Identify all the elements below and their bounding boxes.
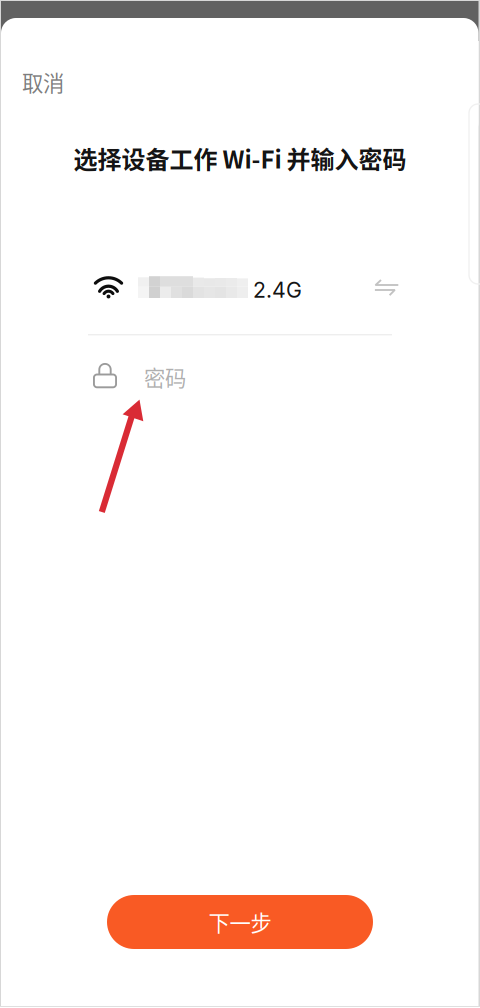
staticText: 选择设备工作 Wi-Fi 并输入密码 [73,141,406,175]
staticText: 密码 [144,362,186,392]
button[interactable]: Switch band [365,265,409,309]
button[interactable]: 密码 [88,352,392,398]
button[interactable]: 取消 [0,61,84,103]
button[interactable]: 下一步 [107,895,373,949]
button[interactable]: 2.4G [88,264,353,312]
staticText: 取消 [22,67,64,97]
staticText: 2.4G [253,277,302,303]
staticText: 下一步 [208,907,271,937]
